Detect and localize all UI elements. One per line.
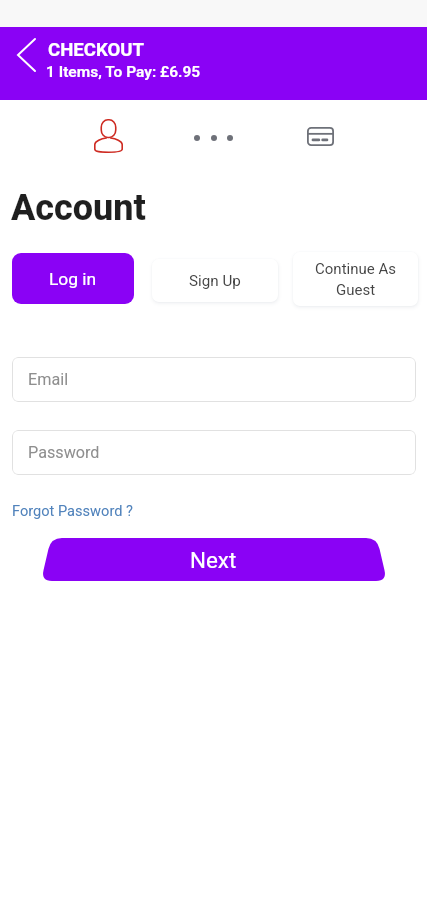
- button[interactable]: Continue As Guest: [293, 252, 418, 306]
- button[interactable]: Password: [12, 430, 416, 475]
- staticText: Account: [11, 187, 146, 229]
- staticText: Next: [190, 547, 237, 573]
- button[interactable]: Next: [0, 538, 427, 581]
- staticText: Email: [28, 370, 69, 389]
- button[interactable]: Sign Up: [152, 259, 278, 302]
- button[interactable]: Account step: [86, 114, 130, 158]
- staticText: 1 Items, To Pay: £6.95: [46, 63, 201, 81]
- button[interactable]: Log in: [12, 253, 134, 304]
- staticText: Log in: [49, 269, 97, 289]
- button[interactable]: Payment step: [298, 114, 342, 158]
- staticText: Password: [28, 443, 100, 462]
- staticText: Continue As Guest: [303, 260, 408, 298]
- button[interactable]: Forgot Password ?: [12, 502, 133, 519]
- staticText: Sign Up: [189, 272, 241, 290]
- button[interactable]: Email: [12, 357, 416, 402]
- staticText: CHECKOUT: [48, 39, 145, 61]
- button[interactable]: Back: [8, 35, 44, 75]
